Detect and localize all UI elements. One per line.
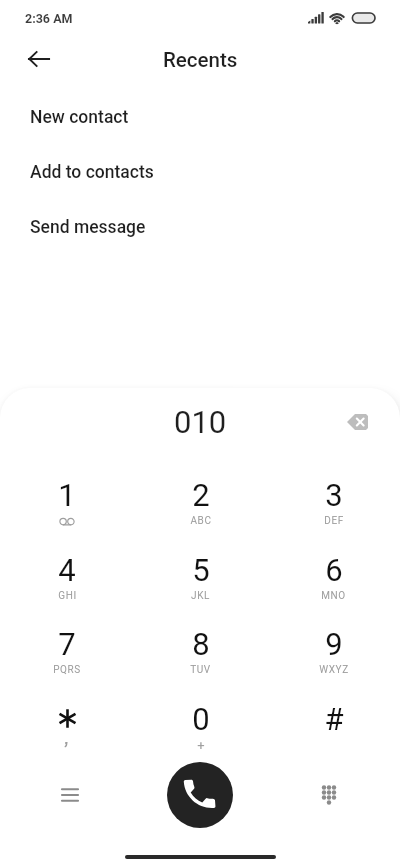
staticText: 3 bbox=[325, 477, 343, 513]
staticText: 2 bbox=[192, 477, 210, 513]
button[interactable]: 0 bbox=[134, 701, 267, 761]
staticText: 2:36 AM bbox=[25, 11, 73, 26]
staticText: 5 bbox=[192, 552, 210, 588]
staticText: MNO bbox=[321, 590, 346, 602]
staticText: Send message bbox=[30, 217, 146, 238]
button[interactable]: 9 bbox=[267, 626, 400, 686]
button[interactable]: 8 bbox=[134, 626, 267, 686]
staticText: WXYZ bbox=[319, 664, 349, 676]
staticText: New contact bbox=[30, 107, 129, 128]
button[interactable]: Dialpad bbox=[307, 773, 351, 817]
staticText: 6 bbox=[325, 552, 343, 588]
staticText: 4 bbox=[58, 552, 76, 588]
button[interactable]: Send message bbox=[0, 200, 400, 255]
button[interactable]: Backspace bbox=[335, 400, 379, 444]
staticText: GHI bbox=[58, 590, 77, 602]
button[interactable]: 7 bbox=[0, 626, 134, 686]
staticText: 0 bbox=[192, 701, 210, 737]
button[interactable]: Back bbox=[17, 37, 61, 81]
staticText: 9 bbox=[325, 626, 343, 662]
staticText: + bbox=[197, 738, 205, 753]
staticText: TUV bbox=[190, 664, 211, 676]
staticText: 1 bbox=[58, 477, 76, 513]
button[interactable]: # bbox=[267, 701, 400, 761]
button[interactable]: 1 bbox=[0, 477, 134, 537]
button[interactable]: Menu bbox=[48, 773, 92, 817]
button[interactable]: 2 bbox=[134, 477, 267, 537]
button[interactable]: 5 bbox=[134, 552, 267, 612]
staticText: Add to contacts bbox=[30, 162, 154, 183]
staticText: DEF bbox=[324, 515, 344, 527]
button[interactable]: Call bbox=[167, 762, 233, 828]
staticText: 7 bbox=[58, 626, 76, 662]
button[interactable] bbox=[0, 701, 134, 761]
staticText: ABC bbox=[190, 515, 212, 527]
button[interactable]: 4 bbox=[0, 552, 134, 612]
button[interactable]: New contact bbox=[0, 90, 400, 145]
staticText: PQRS bbox=[53, 664, 81, 676]
button[interactable]: 3 bbox=[267, 477, 400, 537]
button[interactable]: 6 bbox=[267, 552, 400, 612]
staticText: # bbox=[324, 701, 344, 737]
staticText: Recents bbox=[163, 48, 238, 72]
staticText: JKL bbox=[191, 590, 210, 602]
button[interactable]: Add to contacts bbox=[0, 145, 400, 200]
staticText: 8 bbox=[192, 626, 210, 662]
staticText: 010 bbox=[174, 404, 227, 440]
